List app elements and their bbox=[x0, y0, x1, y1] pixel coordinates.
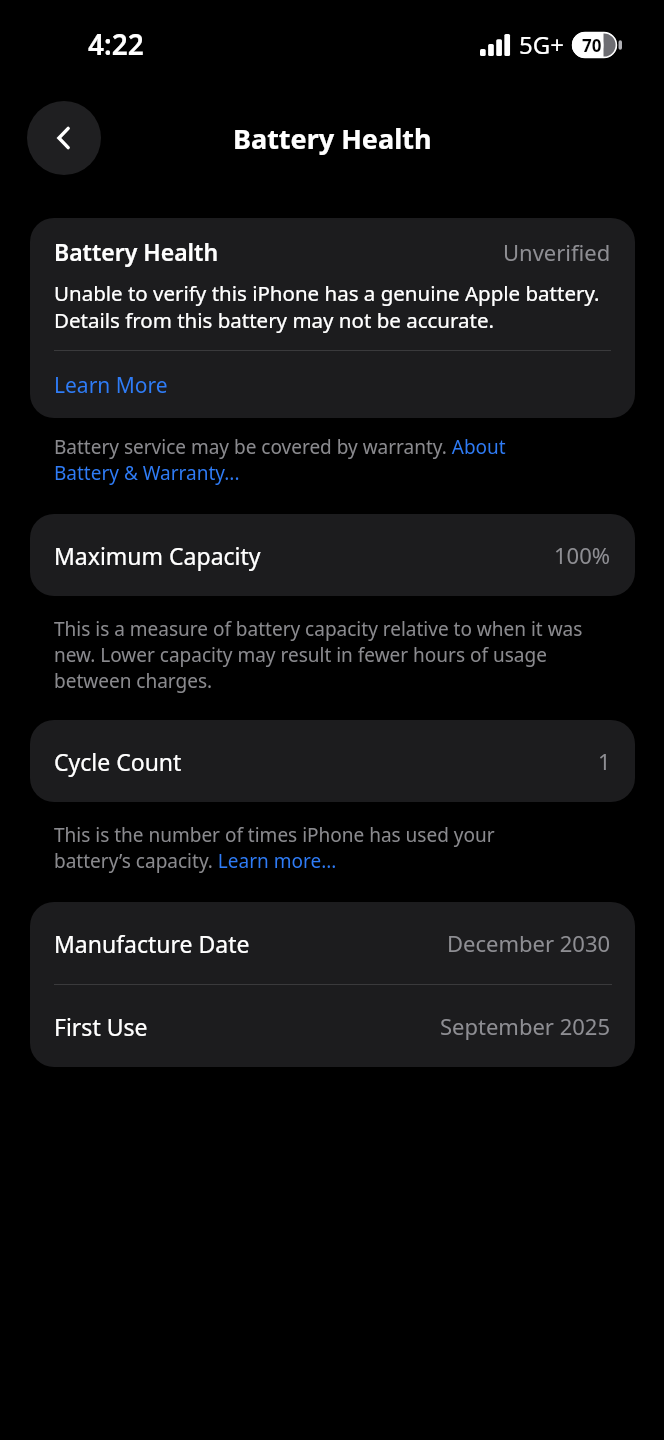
staticText: This is the number of times iPhone has u… bbox=[54, 822, 554, 874]
staticText: Manufacture Date bbox=[54, 928, 250, 959]
staticText: Learn More bbox=[54, 371, 168, 400]
button[interactable]: First Use bbox=[30, 985, 635, 1067]
staticText: Maximum Capacity bbox=[54, 540, 261, 571]
staticText: First Use bbox=[54, 1011, 148, 1042]
button[interactable]: Back bbox=[27, 101, 101, 175]
staticText: 4:22 bbox=[88, 25, 144, 63]
staticText: September 2025 bbox=[440, 1011, 611, 1041]
staticText: Unable to verify this iPhone has a genui… bbox=[54, 279, 611, 334]
staticText: Battery service may be covered by warran… bbox=[54, 434, 574, 486]
button[interactable]: This is the number of times iPhone has u… bbox=[54, 822, 554, 874]
staticText: 100% bbox=[554, 540, 611, 570]
staticText: Battery Health bbox=[54, 236, 219, 267]
staticText: Battery Health bbox=[233, 120, 432, 157]
button[interactable]: Manufacture Date bbox=[30, 902, 635, 984]
staticText: Unverified bbox=[503, 237, 611, 267]
button[interactable]: Learn More bbox=[54, 351, 611, 418]
button[interactable]: Cycle Count bbox=[30, 720, 635, 802]
button[interactable]: Maximum Capacity bbox=[30, 514, 635, 596]
staticText: Cycle Count bbox=[54, 746, 182, 777]
staticText: 5G+ bbox=[519, 28, 564, 61]
staticText: 70 bbox=[582, 34, 602, 57]
staticText: This is a measure of battery capacity re… bbox=[54, 616, 594, 694]
staticText: December 2030 bbox=[447, 928, 611, 958]
button[interactable]: Battery service may be covered by warran… bbox=[54, 434, 574, 486]
staticText: 1 bbox=[598, 746, 611, 776]
